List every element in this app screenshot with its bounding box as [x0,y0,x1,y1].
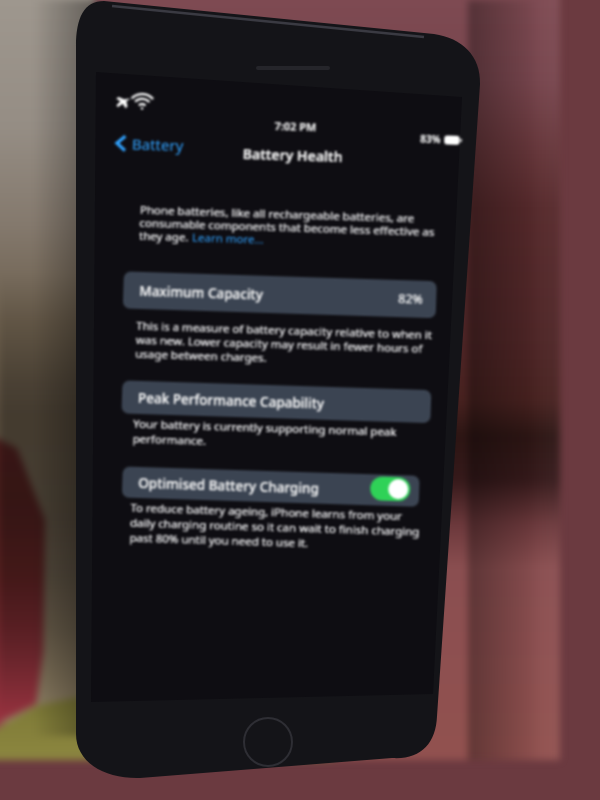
staticText: Your battery is currently supporting nor… [133,416,433,441]
staticText: Peak Performance Capability [138,389,325,413]
staticText: was new. Lower capacity may result in fe… [136,332,436,357]
staticText: This is a measure of battery capacity re… [136,318,436,343]
staticText: performance. [132,431,433,456]
staticText: they age. [139,228,192,246]
button[interactable]: Maximum Capacity [123,271,437,318]
button[interactable]: Learn more… [192,229,264,248]
button[interactable]: Battery [116,133,190,155]
staticText: Phone batteries, like all rechargeable b… [140,202,440,227]
staticText: past 80% until you need to use it. [129,530,430,555]
staticText: Optimised Battery Charging [138,474,319,498]
staticText: Battery [132,134,184,155]
staticText: daily charging routine so it can wait to… [130,515,430,540]
button[interactable]: Optimised Battery Charging toggle [370,476,411,501]
staticText: usage between charges. [135,346,435,371]
staticText: 82% [398,290,423,308]
staticText: consumable components that become less e… [139,215,440,240]
staticText: Battery Health [242,144,343,166]
button[interactable]: Peak Performance Capability [121,380,431,423]
button[interactable]: Optimised Battery Charging [122,466,420,507]
staticText: Maximum Capacity [139,282,264,304]
staticText: 7:02 PM [274,118,317,134]
staticText: 83% [420,132,441,146]
staticText: To reduce battery ageing, iPhone learns … [130,500,431,525]
